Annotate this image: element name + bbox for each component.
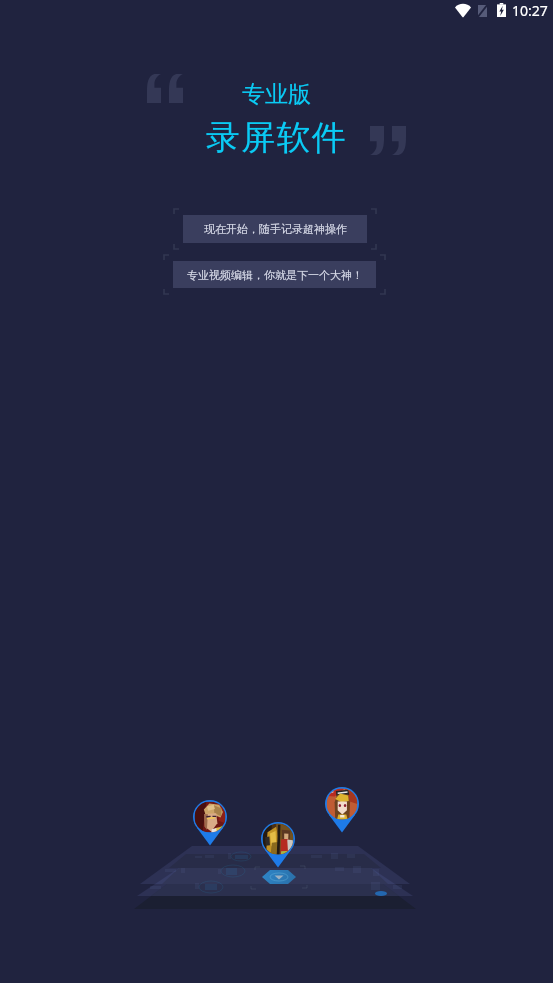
button[interactable]: 游戏角色 3 [324, 786, 360, 835]
staticText: 现在开始，随手记录超神操作 [204, 222, 347, 236]
button[interactable]: 专业视频编辑，你就是下一个大神！ [163, 254, 386, 295]
staticText: 专业视频编辑，你就是下一个大神！ [187, 268, 363, 282]
staticText: 10:27 [512, 1, 548, 20]
staticText: 录屏软件 [206, 116, 347, 159]
button[interactable]: 游戏角色 2 [260, 821, 296, 870]
staticText: 专业版 [242, 80, 311, 109]
button[interactable]: 现在开始，随手记录超神操作 [173, 208, 377, 250]
button[interactable]: 游戏角色 1 [192, 799, 228, 848]
